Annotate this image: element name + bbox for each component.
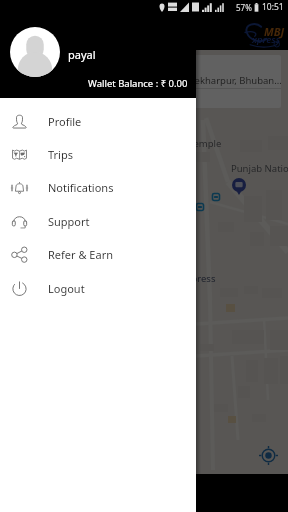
- button[interactable]: [0, 0, 288, 512]
- staticText: Trips: [48, 147, 73, 162]
- staticText: Profile: [48, 114, 82, 129]
- button[interactable]: [10, 27, 60, 77]
- staticText: xpress: [252, 33, 281, 46]
- button[interactable]: Profile: [0, 105, 196, 138]
- staticText: Wallet Balance : ₹ 0.00: [88, 77, 188, 90]
- button[interactable]: Support: [0, 205, 196, 238]
- button[interactable]: Chandrasekharpur, Bhuban…: [150, 55, 281, 108]
- staticText: MBJ Xpress: [166, 272, 216, 285]
- button[interactable]: My location: [259, 446, 278, 465]
- button[interactable]: Logout: [0, 272, 196, 305]
- staticText: Mahabir Temple: [149, 137, 222, 150]
- button[interactable]: Refer & Earn: [0, 238, 196, 271]
- staticText: 10:51: [262, 1, 284, 13]
- staticText: Refer & Earn: [48, 247, 113, 262]
- button[interactable]: Notifications: [0, 171, 196, 204]
- staticText: Punjab National Bank: [231, 162, 288, 175]
- staticText: payal: [68, 47, 96, 62]
- staticText: Logout: [48, 281, 85, 296]
- staticText: Chandrasekharpur, Bhuban…: [152, 74, 281, 87]
- staticText: 57%: [236, 2, 252, 13]
- button[interactable]: Trips: [0, 138, 196, 171]
- staticText: Support: [48, 214, 90, 229]
- staticText: Notifications: [48, 180, 114, 195]
- staticText: MBJ: [264, 24, 285, 39]
